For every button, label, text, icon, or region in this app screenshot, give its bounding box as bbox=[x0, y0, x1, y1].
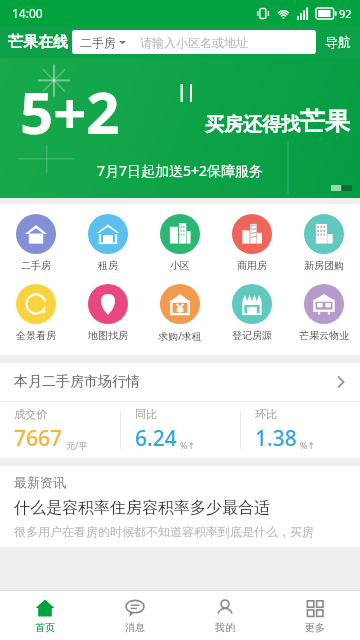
button[interactable]: 登记房源 bbox=[216, 282, 288, 344]
staticText: 5+2 bbox=[20, 72, 120, 151]
button[interactable]: 新房团购 bbox=[288, 212, 360, 274]
staticText: %↑ bbox=[180, 439, 196, 451]
staticText: 更多 bbox=[305, 621, 325, 634]
staticText: 商用房 bbox=[237, 259, 267, 272]
staticText: 登记房源 bbox=[232, 329, 272, 342]
button[interactable]: 全景看房 bbox=[0, 282, 72, 344]
staticText: 1.38 bbox=[255, 424, 297, 453]
staticText: 7667 bbox=[14, 424, 63, 453]
other: 消息 bbox=[125, 598, 145, 618]
staticText: 买房还得找 bbox=[205, 113, 300, 137]
button[interactable]: 本月二手房市场行情 bbox=[0, 363, 360, 401]
staticText: 本月二手房市场行情 bbox=[14, 373, 140, 391]
staticText: 芒果云物业 bbox=[299, 329, 349, 342]
button[interactable]: 首页 bbox=[0, 591, 90, 640]
button[interactable]: 环比 bbox=[241, 402, 360, 458]
button[interactable]: 我的 bbox=[180, 591, 270, 640]
staticText: 芒果在线 bbox=[8, 33, 68, 52]
staticText: 求购/求租 bbox=[158, 329, 202, 343]
button[interactable]: 什么是容积率住房容积率多少最合适 bbox=[0, 498, 360, 547]
button[interactable]: 请输入小区名或地址 bbox=[134, 30, 316, 54]
button[interactable]: 消息 bbox=[90, 591, 180, 640]
button[interactable]: 商用房 bbox=[216, 212, 288, 274]
staticText: 很多用户在看房的时候都不知道容积率到底是什么，买房 bbox=[14, 524, 314, 539]
staticText: 92 bbox=[339, 6, 352, 21]
staticText: 二手房 bbox=[21, 259, 51, 272]
button[interactable]: 二手房 bbox=[0, 212, 72, 274]
staticText: 二手房 bbox=[80, 35, 116, 50]
button[interactable]: 导航 bbox=[316, 34, 360, 50]
staticText: 什么是容积率住房容积率多少最合适 bbox=[14, 498, 270, 518]
staticText: 14:00 bbox=[12, 5, 43, 21]
other: 我的 bbox=[215, 598, 235, 618]
button[interactable]: 小区 bbox=[144, 212, 216, 274]
staticText: 7月7日起加送5+2保障服务 bbox=[97, 161, 264, 180]
staticText: 新房团购 bbox=[304, 259, 344, 272]
button[interactable]: 二手房 bbox=[72, 30, 134, 54]
button[interactable]: 求购/求租 bbox=[144, 282, 216, 345]
other: 首页 bbox=[35, 598, 55, 618]
staticText: 导航 bbox=[325, 34, 351, 50]
staticText: 元/平 bbox=[66, 439, 88, 451]
staticText: 请输入小区名或地址 bbox=[140, 35, 248, 50]
button[interactable]: 芒果云物业 bbox=[288, 282, 360, 344]
button[interactable]: 更多 bbox=[270, 591, 360, 640]
staticText: 成交价 bbox=[14, 407, 47, 421]
staticText: 环比 bbox=[255, 407, 277, 421]
staticText: 小区 bbox=[170, 259, 190, 272]
button[interactable]: 芒果在线 bbox=[0, 33, 72, 52]
button[interactable]: 成交价 bbox=[0, 402, 120, 458]
staticText: 全景看房 bbox=[16, 329, 56, 342]
staticText: 租房 bbox=[98, 259, 118, 272]
button[interactable]: 地图找房 bbox=[72, 282, 144, 344]
staticText: %↑ bbox=[300, 439, 316, 451]
staticText: 芒果 bbox=[300, 106, 350, 137]
staticText: 地图找房 bbox=[88, 329, 128, 342]
staticText: || bbox=[177, 80, 196, 103]
button[interactable]: 5+2 bbox=[0, 58, 360, 198]
staticText: 6.24 bbox=[135, 424, 177, 453]
staticText: 首页 bbox=[35, 621, 55, 634]
other: 更多 bbox=[305, 598, 325, 618]
staticText: 消息 bbox=[125, 621, 145, 634]
staticText: 最新资讯 bbox=[14, 474, 66, 490]
button[interactable]: 同比 bbox=[121, 402, 240, 458]
staticText: 同比 bbox=[135, 407, 157, 421]
staticText: 我的 bbox=[215, 621, 235, 634]
button[interactable]: 租房 bbox=[72, 212, 144, 274]
